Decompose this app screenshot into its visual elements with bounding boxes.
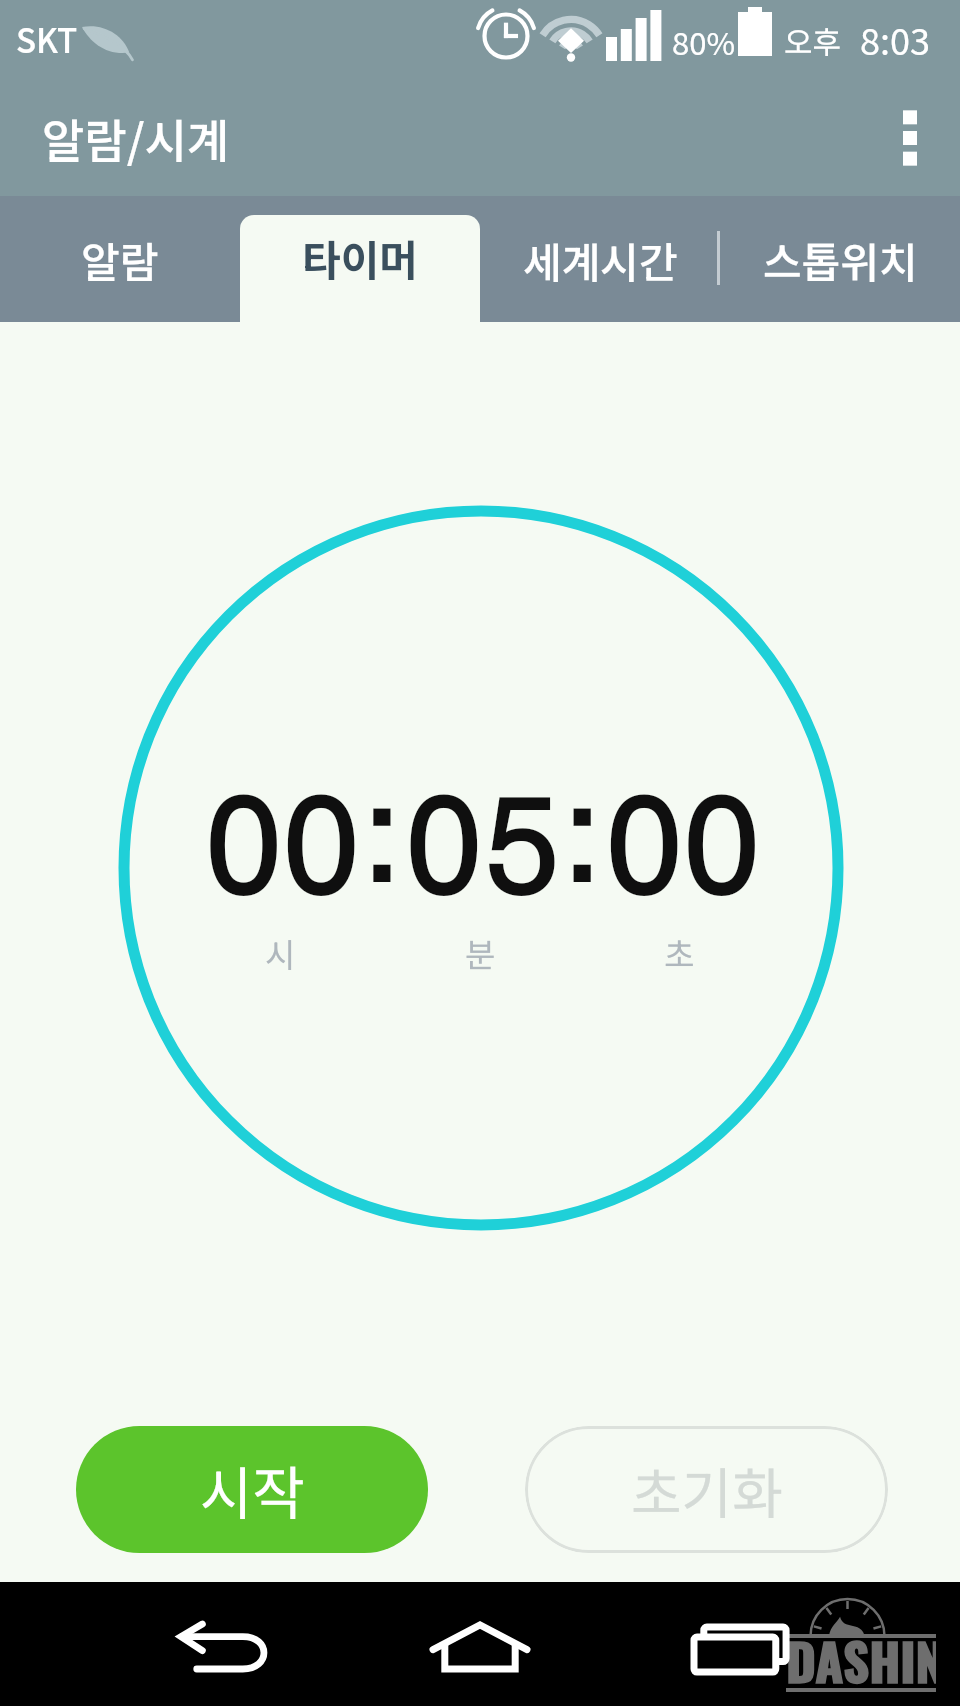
staticText: 00:05:00 (202, 745, 758, 933)
staticText: 시작 (200, 1448, 305, 1531)
button[interactable]: Back (143, 1588, 305, 1706)
button[interactable]: 알람 (0, 196, 240, 322)
staticText: 세계시간 (523, 229, 678, 290)
staticText: 초기화 (631, 1450, 783, 1530)
staticText: 알람 (81, 229, 159, 290)
button[interactable]: Recent apps (659, 1590, 821, 1706)
button[interactable]: Home (399, 1588, 561, 1706)
button[interactable]: 스톱위치 (720, 196, 960, 322)
button[interactable]: More options (860, 80, 960, 196)
staticText: 분 (465, 929, 496, 977)
staticText: 오후 (784, 18, 842, 63)
staticText: 80% (672, 19, 735, 64)
staticText: 타이머 (302, 227, 418, 288)
button[interactable]: 초기화 (525, 1426, 888, 1553)
staticText: 8:03 (860, 13, 930, 65)
button[interactable]: 타이머 (240, 196, 480, 322)
staticText: 스톱위치 (763, 229, 918, 290)
staticText: 초 (664, 929, 695, 977)
button[interactable]: 시작 (76, 1426, 428, 1553)
staticText: 시 (265, 929, 296, 977)
staticText: 알람/시계 (42, 105, 230, 172)
staticText: SKT (16, 15, 78, 63)
staticText: DASHIN (786, 1622, 936, 1698)
button[interactable]: 세계시간 (480, 196, 720, 322)
